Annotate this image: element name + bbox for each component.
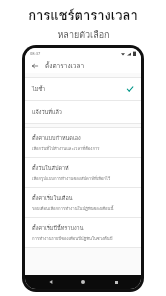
- button[interactable]: Home: [76, 275, 90, 289]
- button[interactable]: ไม่ซ้ำ: [25, 78, 141, 100]
- button[interactable]: แจ้งวันที่แล้ว: [25, 101, 141, 123]
- staticText: ไม่ซ้ำ: [32, 85, 46, 94]
- staticText: เลือกรูปแบบการทำงานของสัปดาห์ที่เลือกไว้: [32, 175, 111, 182]
- staticText: ตั้งค่าแบบกำหนดเอง: [32, 134, 81, 143]
- button[interactable]: ตั้งค่าแบบกำหนดเอง: [25, 128, 141, 157]
- staticText: 08:37: [30, 51, 41, 56]
- button[interactable]: ตั้งค่าเริ่มในเดือน: [25, 188, 141, 217]
- staticText: ตั้งค่าเริ่มในเดือน: [32, 194, 73, 203]
- staticText: ตั้งค่าเริ่มปีนี้ทราบงาน: [32, 224, 84, 233]
- staticText: การแชร์ตารางเวลา: [28, 5, 138, 26]
- staticText: หลายตัวเลือก: [57, 28, 110, 42]
- staticText: การทำงานรายปีของเดือนปีปฏิทินในช่วงต้นปี: [32, 235, 113, 242]
- button[interactable]: ตั้งวันในสัปดาห์: [25, 158, 141, 187]
- button[interactable]: Back: [44, 275, 58, 289]
- staticText: ตั้งวันในสัปดาห์: [32, 164, 69, 173]
- button[interactable]: ตั้งค่าเริ่มปีนี้ทราบงาน: [25, 218, 141, 247]
- staticText: แจ้งวันที่แล้ว: [32, 108, 62, 117]
- button[interactable]: Back: [30, 61, 39, 70]
- button[interactable]: Recent apps: [109, 275, 123, 289]
- staticText: เลือกวันที่ไปทำงานและเวลาที่ต้องการ: [32, 145, 100, 152]
- staticText: ตั้งตารางเวลา: [45, 61, 85, 71]
- staticText: รอบเดือนเลือกการทำงานในปฏิทินของเดือนนี้: [32, 205, 114, 212]
